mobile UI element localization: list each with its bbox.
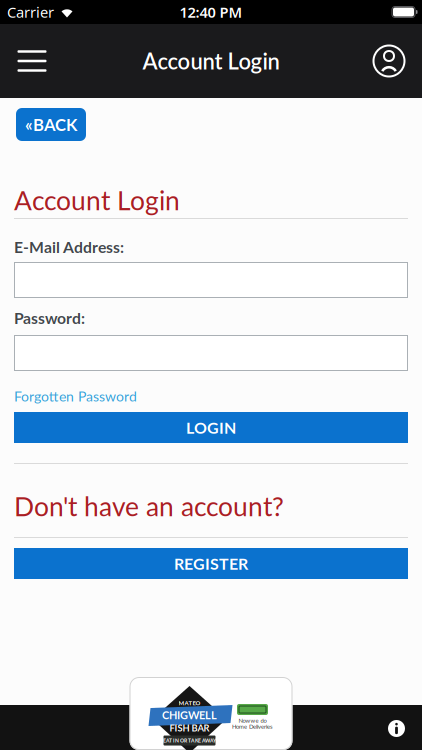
staticText: E-Mail Address: — [14, 238, 124, 256]
staticText: Account Login — [142, 48, 279, 74]
button[interactable]: «BACK — [16, 108, 86, 141]
staticText: CHIGWELL — [162, 708, 217, 721]
staticText: Home Deliveries — [232, 723, 273, 730]
staticText: EAT IN OR TAKE AWAY — [163, 737, 216, 744]
staticText: Password: — [14, 309, 85, 327]
staticText: FISH BAR — [169, 722, 209, 734]
staticText: Account Login — [14, 184, 180, 216]
button[interactable]: LOGIN — [14, 412, 408, 443]
staticText: Carrier — [7, 2, 54, 22]
staticText: REGISTER — [174, 554, 248, 573]
button[interactable]: Forgotten Password — [14, 388, 137, 404]
staticText: 12:40 PM — [179, 2, 242, 22]
button[interactable]: Menu — [10, 39, 54, 83]
button[interactable]: REGISTER — [14, 548, 408, 579]
staticText: Forgotten Password — [14, 388, 137, 404]
staticText: MATEO — [178, 699, 200, 707]
button[interactable]: Info — [388, 720, 405, 737]
staticText: Now we do — [238, 717, 266, 724]
button[interactable]: Account — [367, 39, 411, 83]
staticText: Don't have an account? — [14, 490, 284, 522]
staticText: LOGIN — [186, 418, 236, 437]
staticText: «BACK — [25, 114, 77, 134]
